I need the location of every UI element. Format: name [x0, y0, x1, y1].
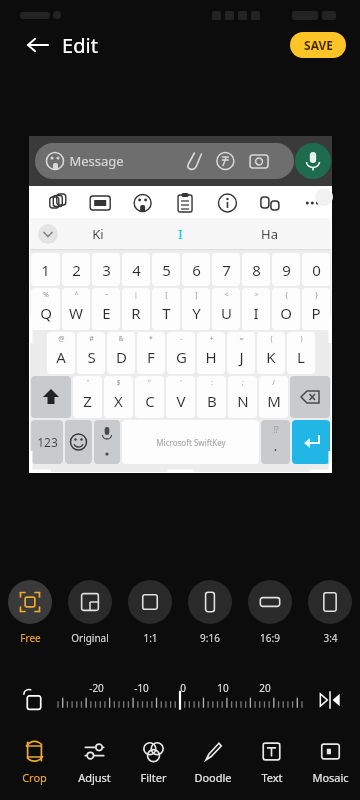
button[interactable]: ]	[182, 288, 210, 330]
button[interactable]: '	[166, 376, 195, 418]
staticText: S	[87, 347, 96, 367]
button[interactable]: [	[152, 288, 180, 330]
staticText: 8	[252, 260, 261, 280]
button[interactable]: >	[242, 288, 270, 330]
button[interactable]: 1:1	[120, 580, 180, 652]
button[interactable]: Crop	[4, 732, 64, 800]
button[interactable]: =	[227, 332, 255, 374]
button[interactable]: 0	[302, 253, 330, 286]
staticText: *	[149, 334, 153, 344]
staticText: W	[69, 303, 83, 323]
staticText: :	[211, 378, 213, 388]
button[interactable]: 3:4	[300, 580, 360, 652]
staticText: }	[315, 290, 318, 300]
staticText: Edit	[62, 32, 98, 59]
button[interactable]: SAVE	[290, 32, 346, 58]
button[interactable]: ̄	[73, 376, 102, 418]
button[interactable]: -	[167, 332, 195, 374]
staticText: C	[145, 391, 155, 411]
staticText: T	[162, 303, 171, 323]
staticText: !?	[273, 424, 279, 435]
button[interactable]: Emoji	[65, 420, 92, 464]
button[interactable]: ~	[92, 288, 120, 330]
staticText: -10	[134, 681, 149, 695]
staticText: F	[147, 347, 155, 367]
button[interactable]: 123	[31, 420, 63, 464]
staticText: A	[56, 347, 66, 367]
button[interactable]: 1	[31, 253, 60, 286]
button[interactable]: (	[257, 332, 285, 374]
button[interactable]: Mosaic	[301, 732, 360, 800]
button[interactable]: Microsoft SwiftKey	[122, 420, 259, 464]
button[interactable]: ;	[228, 376, 257, 418]
button[interactable]: Adjust	[64, 732, 124, 800]
button[interactable]: /	[259, 376, 288, 418]
staticText: -20	[89, 681, 104, 695]
staticText: Q	[40, 303, 52, 323]
button[interactable]: )	[287, 332, 315, 374]
staticText: Filter	[140, 770, 167, 785]
button[interactable]: 7	[212, 253, 240, 286]
button[interactable]: {	[272, 288, 300, 330]
button[interactable]: 2	[62, 253, 90, 286]
button[interactable]: Rotate	[18, 684, 50, 716]
button[interactable]: 8	[242, 253, 270, 286]
button[interactable]: !?	[261, 420, 290, 464]
staticText: -	[180, 334, 183, 344]
button[interactable]: &	[107, 332, 135, 374]
staticText: 4	[132, 260, 141, 280]
staticText: 7	[222, 260, 231, 280]
button[interactable]: Doodle	[183, 732, 242, 800]
button[interactable]: Backspace	[290, 376, 330, 418]
button[interactable]: $	[104, 376, 133, 418]
staticText: SAVE	[304, 37, 333, 53]
button[interactable]: Enter	[292, 420, 330, 464]
button[interactable]: 6	[182, 253, 210, 286]
button[interactable]: 5	[152, 253, 180, 286]
staticText: '	[180, 378, 182, 388]
button[interactable]: |	[122, 288, 150, 330]
button[interactable]: Text	[242, 732, 301, 800]
button[interactable]: Flip	[314, 684, 346, 716]
button[interactable]: 9	[272, 253, 300, 286]
button[interactable]: 3	[92, 253, 120, 286]
staticText: L	[297, 347, 305, 367]
button[interactable]: Back	[16, 23, 60, 67]
staticText: ]	[195, 290, 198, 300]
button[interactable]: #	[77, 332, 105, 374]
button[interactable]: +	[197, 332, 225, 374]
staticText: "	[148, 378, 151, 388]
staticText: 5	[162, 260, 171, 280]
staticText: O	[280, 303, 292, 323]
staticText: >	[254, 290, 259, 300]
staticText: 9	[282, 260, 291, 280]
button[interactable]: "	[135, 376, 164, 418]
button[interactable]: ^	[62, 288, 90, 330]
button[interactable]: *	[137, 332, 165, 374]
staticText: Z	[83, 391, 92, 411]
button[interactable]: Filter	[124, 732, 183, 800]
staticText: H	[205, 347, 217, 367]
button[interactable]: %	[31, 288, 60, 330]
staticText: I	[253, 303, 259, 323]
button[interactable]: 4	[122, 253, 150, 286]
button[interactable]: 16:9	[240, 580, 300, 652]
button[interactable]: Original	[60, 580, 120, 652]
button[interactable]: Shift	[31, 376, 71, 418]
staticText: (	[270, 334, 273, 344]
button[interactable]: Voice input	[94, 420, 120, 464]
staticText: @	[58, 334, 65, 344]
staticText: X	[114, 391, 123, 411]
staticText: K	[266, 347, 276, 367]
staticText: ^	[74, 290, 79, 300]
staticText: Text	[261, 770, 283, 785]
staticText: 20	[259, 681, 271, 695]
button[interactable]: 9:16	[180, 580, 240, 652]
button[interactable]: :	[197, 376, 226, 418]
staticText: {	[285, 290, 288, 300]
staticText: E	[102, 303, 111, 323]
button[interactable]: }	[302, 288, 330, 330]
button[interactable]: Free	[0, 580, 60, 652]
button[interactable]: <	[212, 288, 240, 330]
button[interactable]: @	[47, 332, 75, 374]
